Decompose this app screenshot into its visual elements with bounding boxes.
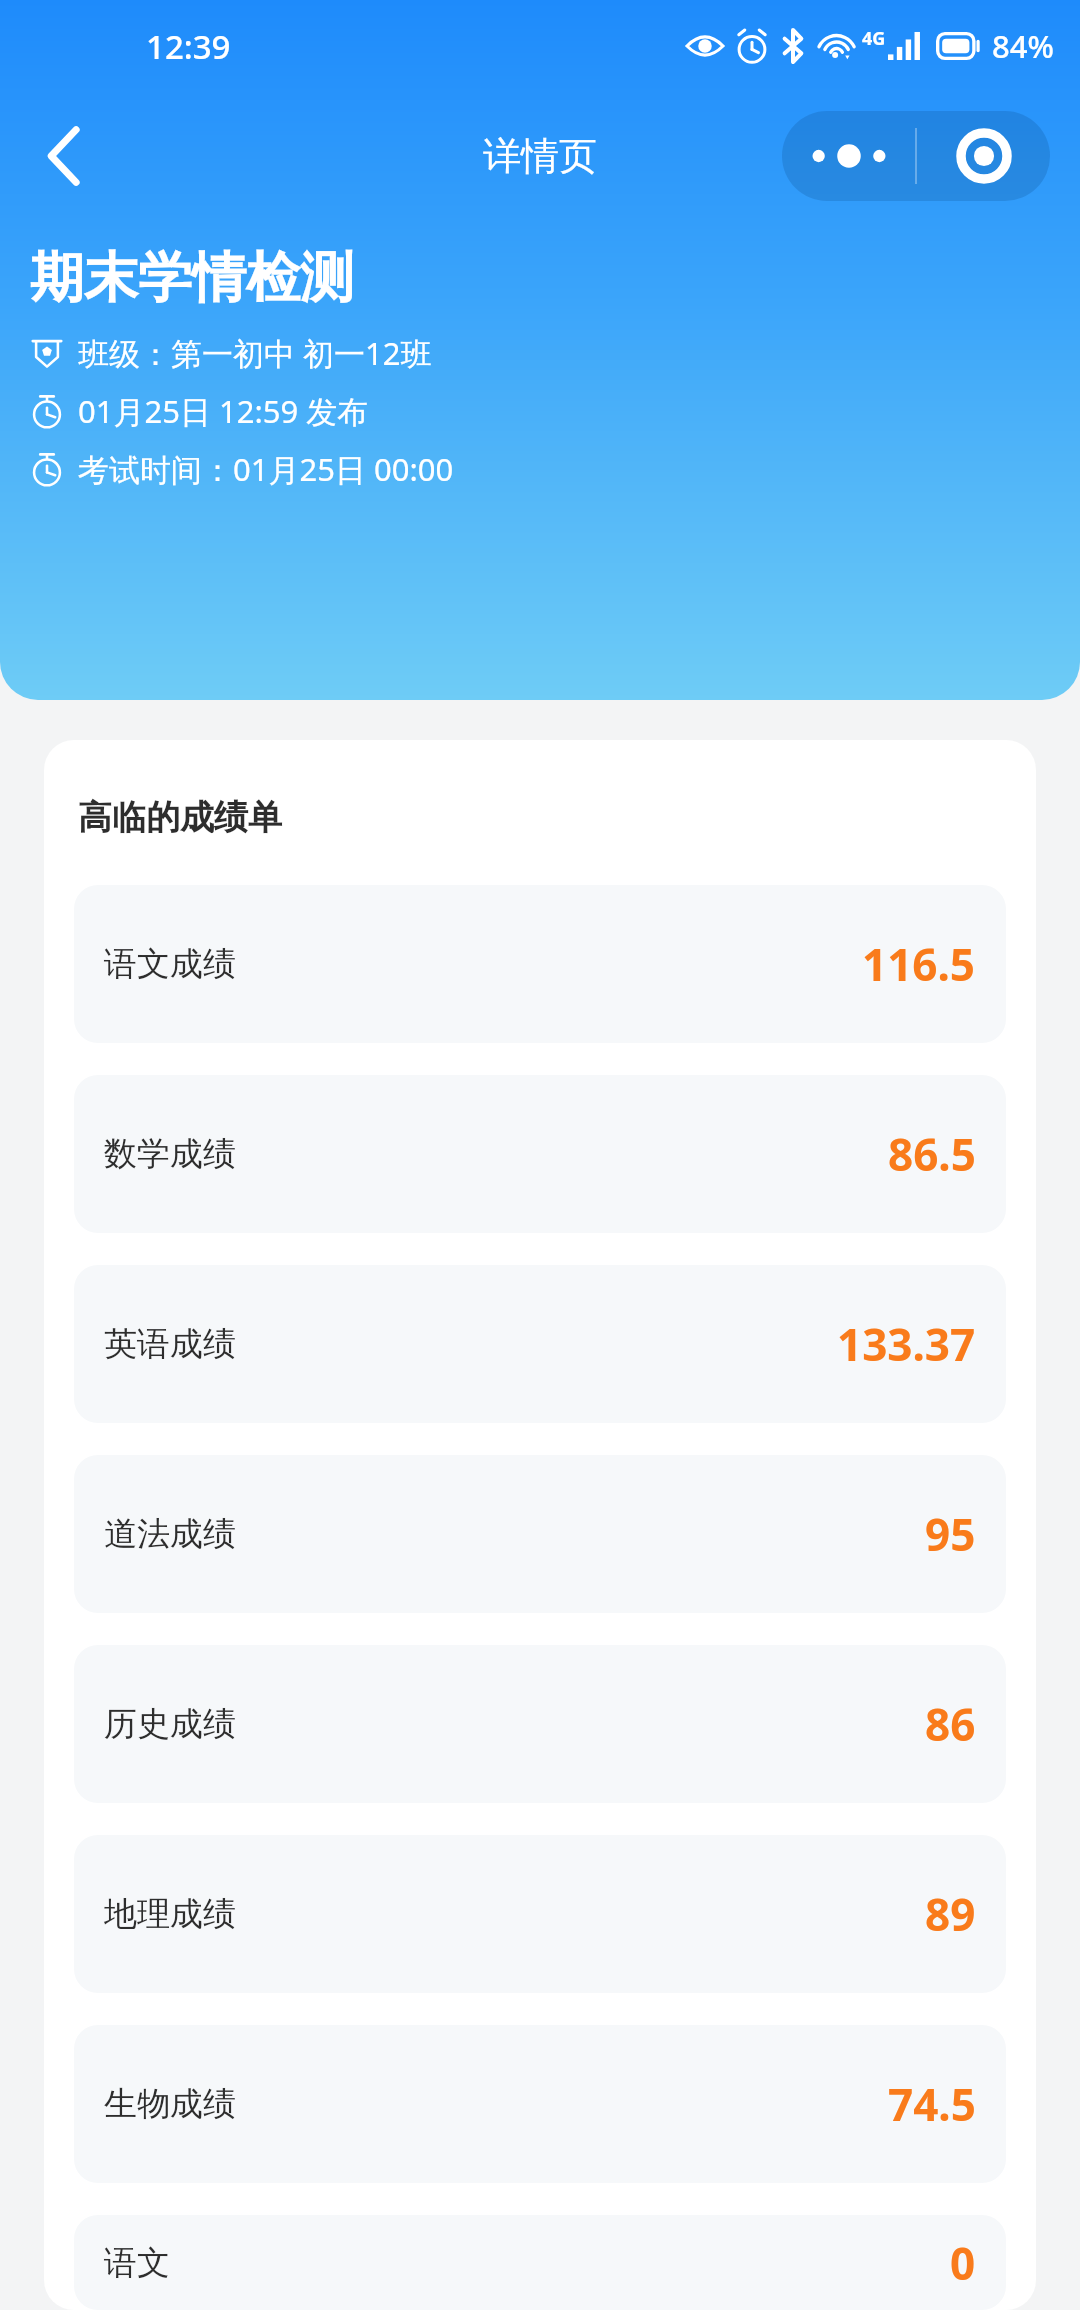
staticText: 74.5 bbox=[888, 2074, 976, 2134]
staticText: 语文成绩 bbox=[104, 943, 236, 985]
button[interactable]: Mini program menu bbox=[782, 111, 1050, 201]
button[interactable]: 历史成绩 bbox=[74, 1645, 1006, 1803]
button[interactable]: 地理成绩 bbox=[74, 1835, 1006, 1993]
staticText: 地理成绩 bbox=[104, 1893, 236, 1935]
staticText: 详情页 bbox=[483, 132, 597, 180]
button[interactable]: 数学成绩 bbox=[74, 1075, 1006, 1233]
button[interactable]: 生物成绩 bbox=[74, 2025, 1006, 2183]
staticText: 4G bbox=[862, 26, 886, 51]
staticText: 班级：第一初中 初一12班 bbox=[78, 332, 432, 374]
staticText: 生物成绩 bbox=[104, 2083, 236, 2125]
staticText: 86.5 bbox=[888, 1124, 976, 1184]
staticText: 86 bbox=[925, 1694, 976, 1754]
button[interactable]: 英语成绩 bbox=[74, 1265, 1006, 1423]
button[interactable]: 道法成绩 bbox=[74, 1455, 1006, 1613]
staticText: 道法成绩 bbox=[104, 1513, 236, 1555]
staticText: 历史成绩 bbox=[104, 1703, 236, 1745]
staticText: 高临的成绩单 bbox=[78, 796, 282, 839]
staticText: 95 bbox=[925, 1504, 976, 1564]
staticText: 考试时间：01月25日 00:00 bbox=[78, 448, 454, 490]
button[interactable]: Back bbox=[14, 106, 114, 206]
staticText: 01月25日 12:59 发布 bbox=[78, 390, 369, 432]
staticText: 116.5 bbox=[862, 934, 976, 994]
staticText: 英语成绩 bbox=[104, 1323, 236, 1365]
staticText: 0 bbox=[950, 2233, 976, 2293]
staticText: 89 bbox=[925, 1884, 976, 1944]
button[interactable]: 语文 bbox=[74, 2215, 1006, 2310]
button[interactable]: 语文成绩 bbox=[74, 885, 1006, 1043]
staticText: 数学成绩 bbox=[104, 1133, 236, 1175]
staticText: 12:39 bbox=[146, 24, 231, 69]
staticText: 语文 bbox=[104, 2242, 170, 2284]
staticText: 84% bbox=[992, 25, 1054, 67]
staticText: 期末学情检测 bbox=[30, 244, 354, 312]
staticText: 133.37 bbox=[837, 1314, 976, 1374]
